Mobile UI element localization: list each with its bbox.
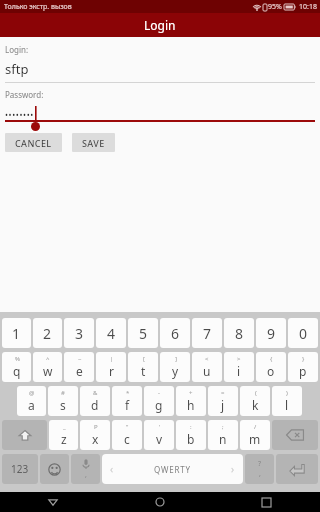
staticText: >: [237, 355, 241, 363]
button[interactable]: [: [128, 352, 158, 382]
button[interactable]: 9: [256, 318, 286, 348]
staticText: ?: [258, 459, 262, 469]
button[interactable]: ••••••••: [5, 109, 34, 120]
button[interactable]: 2: [33, 318, 62, 348]
staticText: ,: [85, 470, 87, 480]
button[interactable]: Home: [106, 492, 213, 512]
staticText: o: [267, 363, 275, 379]
staticText: z: [61, 431, 67, 447]
button[interactable]: *: [112, 386, 142, 416]
staticText: CANCEL: [15, 137, 52, 149]
staticText: p: [299, 363, 307, 379]
button[interactable]: ]: [160, 352, 190, 382]
button[interactable]: Recent apps: [213, 492, 320, 512]
staticText: b: [187, 431, 195, 447]
button[interactable]: =: [208, 386, 238, 416]
button[interactable]: ;: [208, 420, 238, 450]
staticText: ›: [231, 462, 235, 476]
staticText: k: [252, 397, 259, 413]
staticText: =: [221, 389, 225, 397]
staticText: :: [190, 423, 192, 431]
staticText: ^: [46, 355, 50, 363]
staticText: |: [110, 355, 114, 363]
button[interactable]: sftp: [5, 60, 29, 78]
staticText: *: [126, 389, 130, 397]
button[interactable]: @: [17, 386, 46, 416]
button[interactable]: :: [176, 420, 206, 450]
staticText: <: [205, 355, 209, 363]
button[interactable]: QWERTY: [102, 454, 243, 484]
staticText: +: [189, 389, 193, 397]
button[interactable]: {: [256, 352, 286, 382]
staticText: %: [15, 355, 20, 363]
button[interactable]: ": [112, 420, 142, 450]
staticText: y: [172, 363, 179, 379]
button[interactable]: 4: [96, 318, 126, 348]
button[interactable]: ': [144, 420, 174, 450]
button[interactable]: 0: [288, 318, 318, 348]
button[interactable]: _: [49, 420, 78, 450]
staticText: }: [302, 355, 305, 363]
staticText: i: [237, 363, 241, 379]
button[interactable]: Emoji: [40, 454, 69, 484]
staticText: @: [29, 389, 35, 397]
button[interactable]: Back: [0, 492, 106, 512]
button[interactable]: 5: [128, 318, 158, 348]
staticText: QWERTY: [154, 464, 191, 475]
button[interactable]: <: [192, 352, 222, 382]
button[interactable]: (: [240, 386, 270, 416]
button[interactable]: 1: [2, 318, 31, 348]
staticText: m: [249, 431, 261, 447]
button[interactable]: >: [224, 352, 254, 382]
button[interactable]: +: [176, 386, 206, 416]
button[interactable]: Enter: [276, 454, 318, 484]
button[interactable]: ~: [64, 352, 94, 382]
button[interactable]: /: [240, 420, 270, 450]
staticText: e: [76, 363, 83, 379]
staticText: u: [203, 363, 211, 379]
staticText: n: [219, 431, 227, 447]
staticText: ;: [222, 423, 224, 431]
staticText: 0: [299, 324, 308, 343]
staticText: g: [155, 397, 163, 413]
button[interactable]: -: [144, 386, 174, 416]
button[interactable]: &: [80, 386, 110, 416]
staticText: ,: [259, 469, 261, 479]
button[interactable]: 8: [224, 318, 254, 348]
staticText: r: [109, 363, 114, 379]
button[interactable]: 7: [192, 318, 222, 348]
staticText: {: [270, 355, 273, 363]
staticText: l: [285, 397, 289, 413]
staticText: x: [92, 431, 99, 447]
staticText: 3: [75, 324, 84, 343]
button[interactable]: CANCEL: [5, 133, 62, 152]
staticText: d: [91, 397, 99, 413]
staticText: -: [158, 389, 160, 397]
staticText: /: [254, 423, 257, 431]
button[interactable]: SAVE: [72, 133, 115, 152]
staticText: j: [221, 397, 225, 413]
button[interactable]: #: [48, 386, 78, 416]
button[interactable]: P: [80, 420, 110, 450]
staticText: ]: [175, 355, 177, 363]
button[interactable]: %: [2, 352, 31, 382]
staticText: 6: [171, 324, 180, 343]
button[interactable]: ^: [33, 352, 62, 382]
staticText: f: [125, 397, 130, 413]
button[interactable]: ): [272, 386, 302, 416]
staticText: 5: [139, 324, 148, 343]
staticText: 1: [12, 324, 21, 343]
button[interactable]: Numbers and symbols: [2, 454, 38, 484]
button[interactable]: 3: [64, 318, 94, 348]
staticText: h: [187, 397, 195, 413]
staticText: 7: [203, 324, 212, 343]
button[interactable]: }: [288, 352, 318, 382]
staticText: v: [156, 431, 163, 447]
button[interactable]: 6: [160, 318, 190, 348]
staticText: q: [13, 363, 21, 379]
button[interactable]: Voice input: [71, 454, 100, 484]
button[interactable]: Backspace: [272, 420, 318, 450]
button[interactable]: |: [96, 352, 126, 382]
button[interactable]: Shift: [2, 420, 47, 450]
